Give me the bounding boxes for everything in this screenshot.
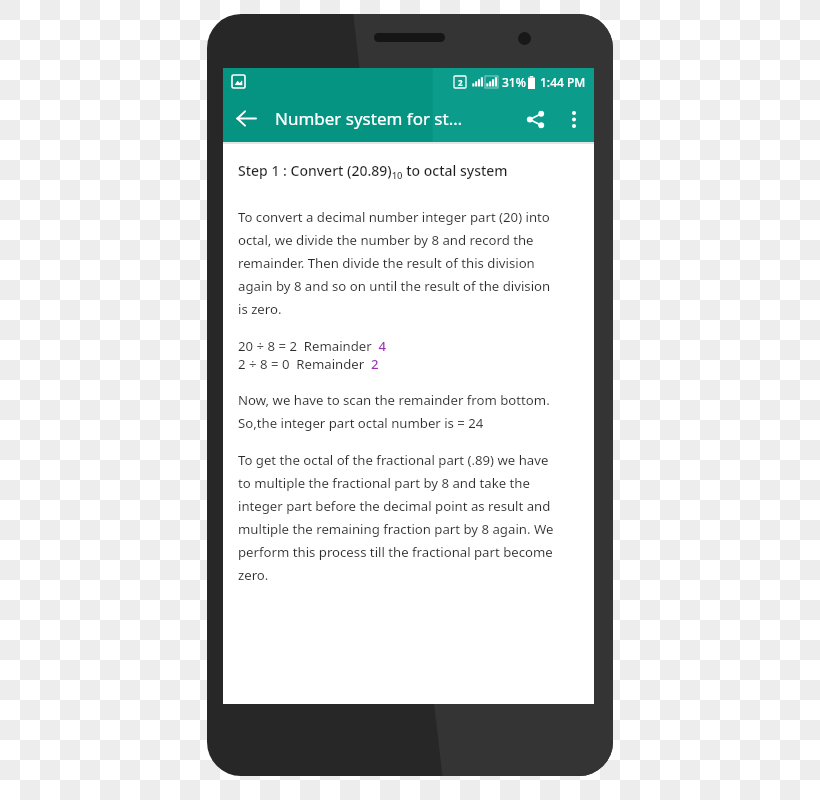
button[interactable]: More options [556,101,592,137]
staticText: 31% [502,74,526,90]
button[interactable]: Back [223,95,270,142]
button[interactable]: Share [514,98,556,140]
staticText: Step 1 : Convert (20.89)10 to octal syst… [238,161,508,182]
staticText: 20 ÷ 8 = 2 Remainder 4 [238,337,387,355]
staticText: Number system for st… [275,107,463,130]
staticText: 1:44 PM [540,74,586,90]
staticText: To get the octal of the fractional part … [238,451,554,584]
staticText: 2 [458,77,463,88]
staticText: 2 ÷ 8 = 0 Remainder 2 [238,355,379,373]
staticText: Now, we have to scan the remainder from … [238,391,550,432]
staticText: To convert a decimal number integer part… [238,208,551,318]
